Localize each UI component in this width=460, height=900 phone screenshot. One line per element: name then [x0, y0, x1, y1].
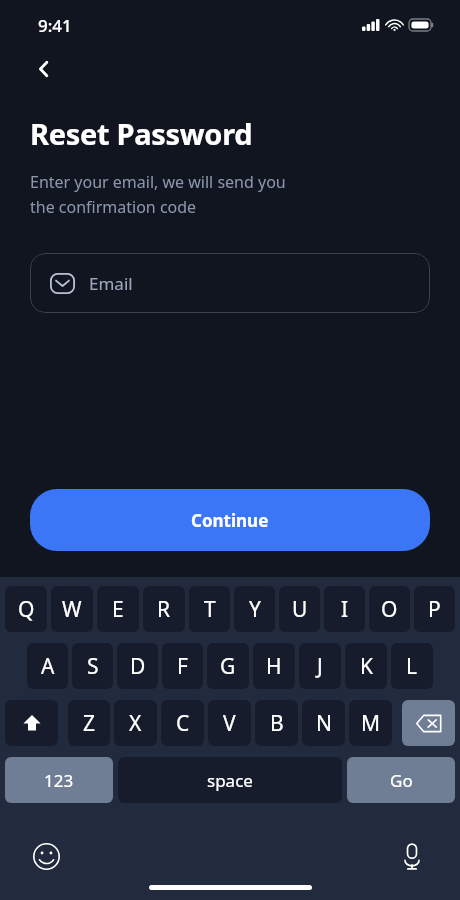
- staticText: Continue: [191, 509, 269, 532]
- staticText: 123: [44, 769, 74, 792]
- staticText: 9:41: [38, 14, 72, 37]
- staticText: T: [204, 595, 216, 624]
- staticText: S: [87, 652, 99, 681]
- button[interactable]: G: [207, 643, 249, 689]
- button[interactable]: N: [302, 700, 345, 746]
- button[interactable]: C: [161, 700, 204, 746]
- staticText: I: [341, 595, 349, 624]
- staticText: A: [41, 652, 55, 681]
- staticText: R: [157, 595, 171, 624]
- staticText: Go: [390, 769, 413, 792]
- button[interactable]: Backspace: [402, 700, 455, 746]
- button[interactable]: O: [369, 586, 410, 632]
- button[interactable]: K: [345, 643, 387, 689]
- button[interactable]: I: [324, 586, 365, 632]
- button[interactable]: U: [279, 586, 320, 632]
- button[interactable]: Q: [5, 586, 47, 632]
- button[interactable]: space: [118, 757, 342, 803]
- button[interactable]: S: [72, 643, 113, 689]
- button[interactable]: Y: [234, 586, 275, 632]
- staticText: B: [270, 709, 284, 738]
- staticText: C: [176, 709, 190, 738]
- button[interactable]: L: [391, 643, 433, 689]
- button[interactable]: Shift: [5, 700, 58, 746]
- staticText: U: [292, 595, 308, 624]
- button[interactable]: W: [51, 586, 93, 632]
- button[interactable]: M: [349, 700, 392, 746]
- staticText: F: [177, 652, 188, 681]
- button[interactable]: Go: [347, 757, 455, 803]
- button[interactable]: T: [189, 586, 230, 632]
- button[interactable]: H: [253, 643, 295, 689]
- button[interactable]: 123: [5, 757, 113, 803]
- button[interactable]: E: [97, 586, 139, 632]
- button[interactable]: D: [117, 643, 158, 689]
- staticText: G: [220, 652, 236, 681]
- button[interactable]: Continue: [30, 489, 430, 551]
- staticText: Y: [249, 595, 261, 624]
- button[interactable]: Emoji: [26, 836, 66, 876]
- button[interactable]: Email: [30, 253, 430, 313]
- button[interactable]: V: [208, 700, 251, 746]
- button[interactable]: Voice input: [392, 836, 432, 876]
- staticText: K: [360, 652, 373, 681]
- staticText: X: [129, 709, 142, 738]
- staticText: H: [266, 652, 282, 681]
- staticText: Reset Password: [30, 114, 253, 153]
- staticText: M: [361, 709, 381, 738]
- button[interactable]: A: [27, 643, 68, 689]
- button[interactable]: Back: [22, 47, 66, 91]
- button[interactable]: Z: [68, 700, 110, 746]
- staticText: Q: [18, 595, 35, 624]
- staticText: D: [130, 652, 146, 681]
- button[interactable]: F: [162, 643, 203, 689]
- button[interactable]: R: [143, 586, 185, 632]
- button[interactable]: P: [414, 586, 455, 632]
- button[interactable]: J: [299, 643, 341, 689]
- staticText: V: [223, 709, 236, 738]
- staticText: P: [428, 595, 441, 624]
- staticText: J: [317, 652, 323, 681]
- staticText: E: [112, 595, 124, 624]
- button[interactable]: B: [255, 700, 298, 746]
- staticText: Enter your email, we will send you the c…: [30, 171, 286, 217]
- staticText: O: [381, 595, 398, 624]
- button[interactable]: X: [114, 700, 157, 746]
- staticText: Z: [83, 709, 96, 738]
- staticText: N: [316, 709, 332, 738]
- staticText: space: [207, 769, 253, 792]
- staticText: W: [62, 595, 82, 624]
- staticText: Email: [89, 272, 133, 295]
- staticText: L: [406, 652, 418, 681]
